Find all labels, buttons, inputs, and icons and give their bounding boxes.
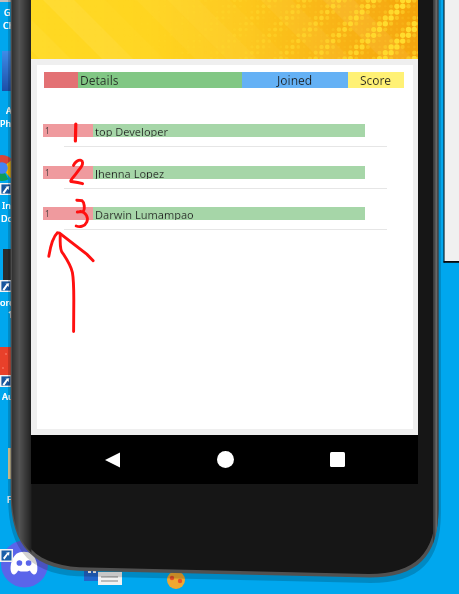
button[interactable]: Recent apps	[306, 435, 368, 484]
staticText: Ins	[2, 199, 16, 211]
button[interactable]: Back	[81, 435, 143, 484]
button[interactable]: Home	[194, 435, 256, 484]
staticText: Doc	[1, 212, 18, 224]
button[interactable]: 1	[37, 166, 413, 207]
staticText: top Developer	[95, 124, 169, 137]
staticText: 1	[45, 208, 50, 219]
staticText: Details	[80, 72, 119, 88]
button[interactable]: Details	[78, 72, 242, 88]
staticText: Go	[4, 6, 17, 18]
staticText: Au	[2, 390, 14, 402]
staticText: Ch	[3, 19, 15, 31]
staticText: F	[7, 493, 12, 505]
staticText: Jhenna Lopez	[95, 166, 165, 179]
staticText: 1	[45, 167, 50, 178]
button[interactable]: 1	[37, 124, 413, 166]
button[interactable]: Joined	[242, 72, 348, 88]
button[interactable]: Score	[348, 72, 404, 88]
staticText: Score	[360, 72, 392, 88]
staticText: ord	[0, 296, 15, 308]
staticText: Joined	[277, 72, 313, 88]
staticText: Ad	[6, 104, 18, 116]
staticText: Darwin Lumampao	[95, 207, 194, 220]
staticText: 1	[45, 125, 50, 136]
staticText: Pho	[0, 117, 17, 129]
staticText: 1	[8, 308, 14, 320]
button[interactable]: 1	[37, 207, 413, 248]
